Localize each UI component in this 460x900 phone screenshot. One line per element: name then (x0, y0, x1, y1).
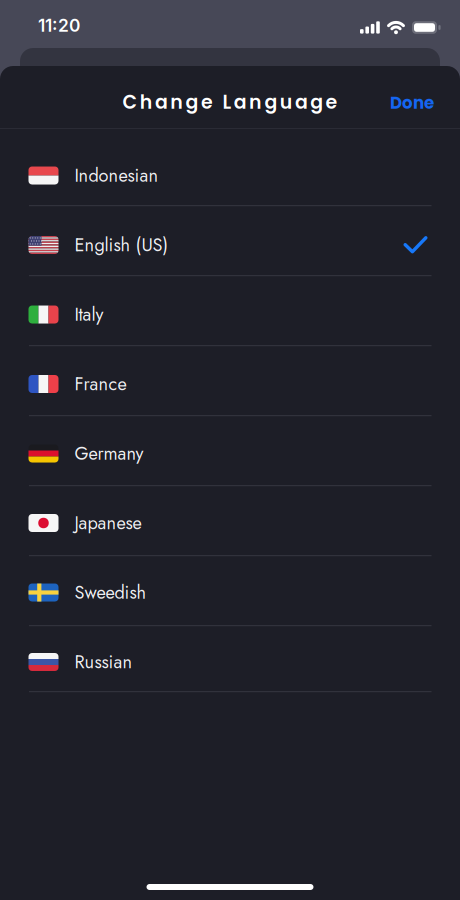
button[interactable]: Indonesian (0, 144, 460, 206)
staticText: France (74, 371, 126, 397)
button[interactable]: France (0, 353, 460, 415)
staticText: Japanese (74, 510, 141, 536)
button[interactable]: Russian (0, 631, 460, 693)
button[interactable]: Japanese (0, 492, 460, 554)
staticText: English (US) (74, 232, 168, 258)
button[interactable]: Done (354, 87, 434, 119)
staticText: 11:20 (38, 15, 80, 36)
button[interactable]: Sweedish (0, 561, 460, 623)
button[interactable]: English (US) (0, 214, 460, 276)
staticText: Indonesian (74, 162, 158, 189)
staticText: Russian (74, 649, 132, 675)
button[interactable]: Germany (0, 422, 460, 484)
staticText: Italy (74, 301, 103, 328)
staticText: Germany (74, 440, 143, 467)
staticText: Change Language (122, 89, 338, 115)
staticText: Done (390, 91, 434, 115)
staticText: Sweedish (74, 579, 146, 606)
button[interactable]: Italy (0, 283, 460, 345)
